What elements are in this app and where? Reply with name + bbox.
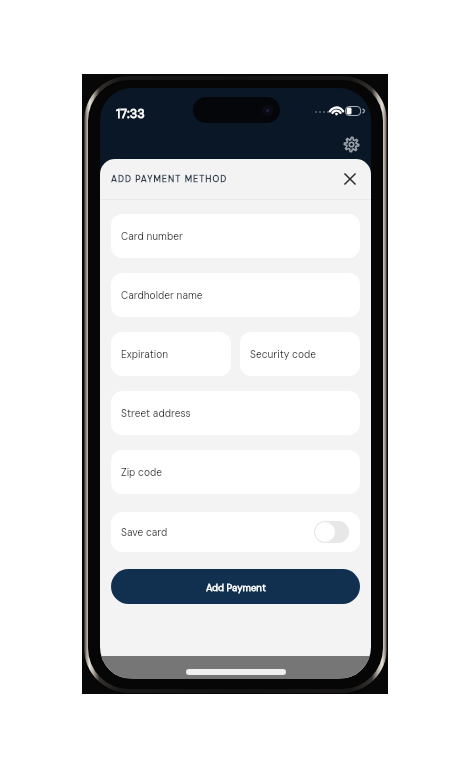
staticText: Cardholder name: [121, 289, 203, 302]
staticText: Expiration: [121, 348, 169, 361]
staticText: Security code: [250, 348, 316, 361]
staticText: Add Payment: [206, 581, 266, 593]
staticText: Save card: [121, 526, 168, 539]
button[interactable]: Settings: [338, 131, 364, 157]
staticText: Zip code: [121, 466, 162, 479]
staticText: 17:33: [116, 106, 145, 122]
button[interactable]: Zip code: [111, 450, 360, 494]
button[interactable]: Close: [338, 167, 362, 191]
button[interactable]: Save card: [111, 512, 360, 552]
button[interactable]: Card number: [111, 214, 360, 258]
staticText: Street address: [121, 407, 191, 420]
staticText: Card number: [121, 230, 183, 243]
button[interactable]: Expiration: [111, 332, 231, 376]
button[interactable]: Street address: [111, 391, 360, 435]
button[interactable]: Cardholder name: [111, 273, 360, 317]
button[interactable]: Security code: [240, 332, 360, 376]
button[interactable]: Add Payment: [111, 569, 360, 604]
staticText: ADD PAYMENT METHOD: [111, 173, 228, 185]
